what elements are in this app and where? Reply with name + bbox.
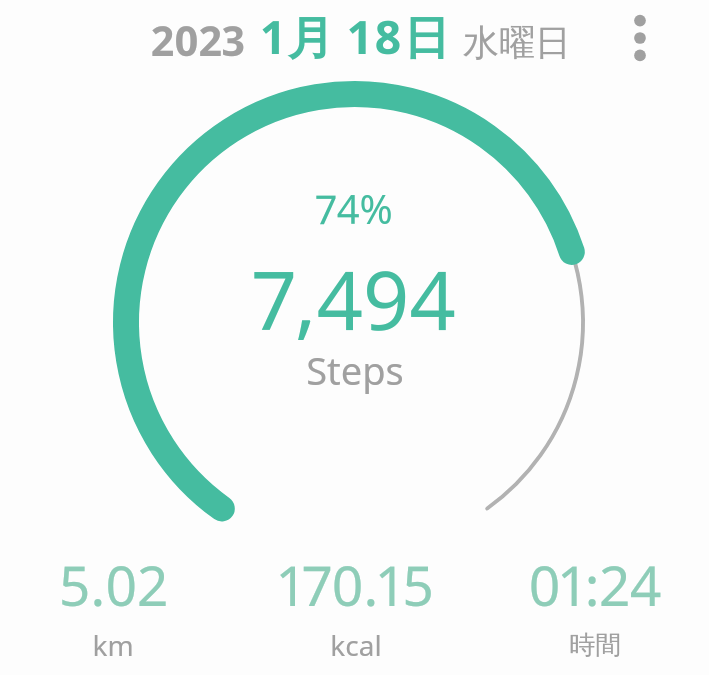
staticText: 01:24 (528, 547, 662, 622)
staticText: 7,494 (253, 243, 456, 353)
staticText: 時間 (569, 629, 621, 662)
staticText: Steps (306, 344, 404, 396)
button[interactable]: 170.15 (244, 547, 468, 665)
staticText: km (92, 626, 134, 664)
staticText: 水曜日 (463, 20, 571, 65)
button[interactable]: Step goal progress, 74 percent (100, 68, 609, 577)
button[interactable]: 2023 (140, 4, 580, 68)
staticText: kcal (330, 626, 382, 664)
staticText: 170.15 (279, 547, 434, 622)
staticText: 74% (316, 181, 393, 235)
button[interactable]: 01:24 (483, 547, 707, 665)
staticText: 2023 (151, 12, 246, 68)
button[interactable]: More options (616, 14, 664, 62)
staticText: 5.02 (59, 547, 168, 622)
button[interactable]: 5.02 (1, 547, 225, 665)
staticText: 1月 18日 (262, 5, 452, 68)
